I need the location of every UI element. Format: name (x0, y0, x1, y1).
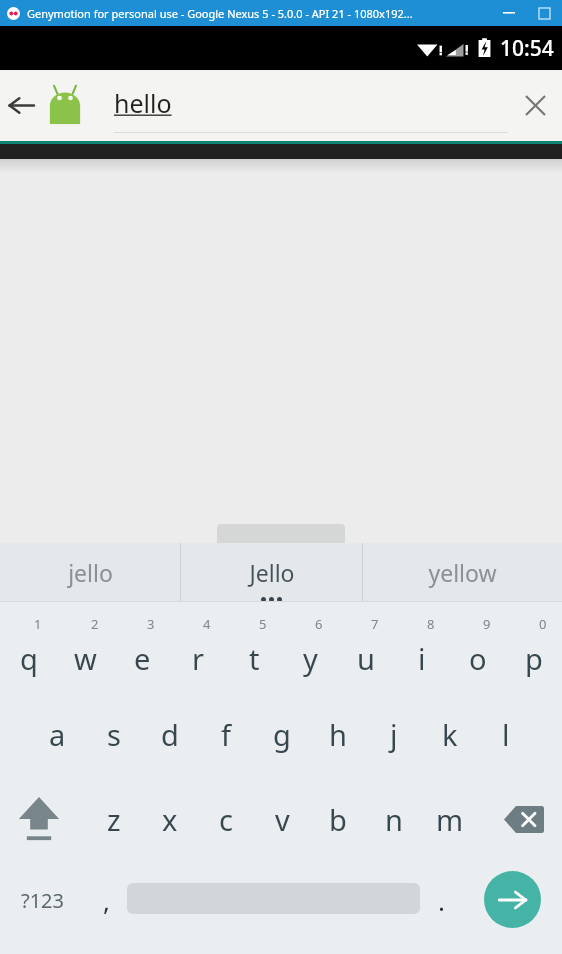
button[interactable]: l (478, 692, 534, 776)
button[interactable]: c (198, 776, 254, 862)
staticText: q (20, 639, 38, 678)
button[interactable]: Space (127, 862, 420, 954)
staticText: l (502, 715, 510, 754)
staticText: 9 (483, 615, 491, 633)
staticText: g (273, 715, 291, 754)
staticText: 7 (371, 615, 379, 633)
button[interactable]: Back (0, 70, 42, 141)
staticText: w (74, 639, 97, 678)
staticText: . (438, 883, 445, 918)
button[interactable]: . (420, 862, 462, 954)
button[interactable]: Backspace (486, 776, 562, 862)
staticText: 6 (315, 615, 323, 633)
staticText: h (329, 715, 347, 754)
staticText: y (303, 639, 318, 678)
staticText: v (275, 800, 290, 839)
button[interactable]: 6 (282, 602, 338, 692)
staticText: ?123 (21, 887, 64, 914)
button[interactable]: 8 (394, 602, 450, 692)
button[interactable]: 2 (57, 602, 114, 692)
button[interactable]: yellow (363, 543, 562, 602)
staticText: yellow (428, 557, 497, 588)
button[interactable]: b (310, 776, 366, 862)
button[interactable]: x (142, 776, 198, 862)
staticText: 3 (147, 615, 155, 633)
button[interactable]: h (310, 692, 366, 776)
button[interactable]: 7 (338, 602, 394, 692)
staticText: 0 (539, 615, 547, 633)
staticText: u (357, 639, 375, 678)
button[interactable]: ?123 (0, 862, 85, 954)
button[interactable]: , (85, 862, 127, 954)
staticText: m (436, 800, 464, 839)
staticText: 8 (427, 615, 435, 633)
button[interactable]: Shift (0, 776, 77, 862)
staticText: s (107, 715, 121, 754)
button[interactable]: 9 (450, 602, 506, 692)
staticText: 2 (91, 615, 99, 633)
button[interactable]: Clear (508, 70, 562, 141)
staticText: b (329, 800, 347, 839)
staticText: 5 (259, 615, 267, 633)
staticText: z (107, 800, 121, 839)
staticText: hello (114, 86, 172, 120)
staticText: c (219, 800, 233, 839)
staticText: d (161, 715, 179, 754)
staticText: p (525, 639, 543, 678)
button[interactable]: k (422, 692, 478, 776)
button[interactable]: App icon (42, 70, 88, 141)
staticText: Jello (249, 557, 295, 588)
staticText: k (442, 715, 458, 754)
button[interactable]: Search (462, 862, 562, 954)
staticText: Genymotion for personal use - Google Nex… (27, 6, 413, 21)
button[interactable]: a (29, 692, 86, 776)
button[interactable]: 1 (0, 602, 57, 692)
button[interactable]: Maximize (526, 0, 562, 26)
button[interactable]: 3 (114, 602, 170, 692)
staticText: f (221, 715, 231, 754)
staticText: t (249, 639, 260, 678)
staticText: 4 (203, 615, 211, 633)
button[interactable]: z (86, 776, 142, 862)
button[interactable]: 5 (226, 602, 282, 692)
staticText: 1 (34, 615, 42, 633)
staticText: i (418, 639, 426, 678)
button[interactable]: f (198, 692, 254, 776)
staticText: a (49, 715, 66, 754)
button[interactable]: n (366, 776, 422, 862)
staticText: o (469, 639, 487, 678)
staticText: , (103, 883, 110, 918)
button[interactable]: s (86, 692, 142, 776)
button[interactable]: m (422, 776, 478, 862)
button[interactable]: jello (0, 543, 180, 602)
button[interactable]: 4 (170, 602, 226, 692)
button[interactable]: Jello (181, 543, 362, 602)
staticText: j (390, 715, 398, 754)
staticText: n (385, 800, 403, 839)
button[interactable]: j (366, 692, 422, 776)
staticText: jello (68, 557, 113, 588)
button[interactable]: v (254, 776, 310, 862)
button[interactable]: d (142, 692, 198, 776)
button[interactable]: g (254, 692, 310, 776)
staticText: r (192, 639, 204, 678)
staticText: e (134, 639, 151, 678)
button[interactable]: 0 (506, 602, 562, 692)
button[interactable]: Minimize (492, 0, 526, 26)
staticText: x (162, 800, 178, 839)
staticText: 10:54 (500, 34, 554, 63)
